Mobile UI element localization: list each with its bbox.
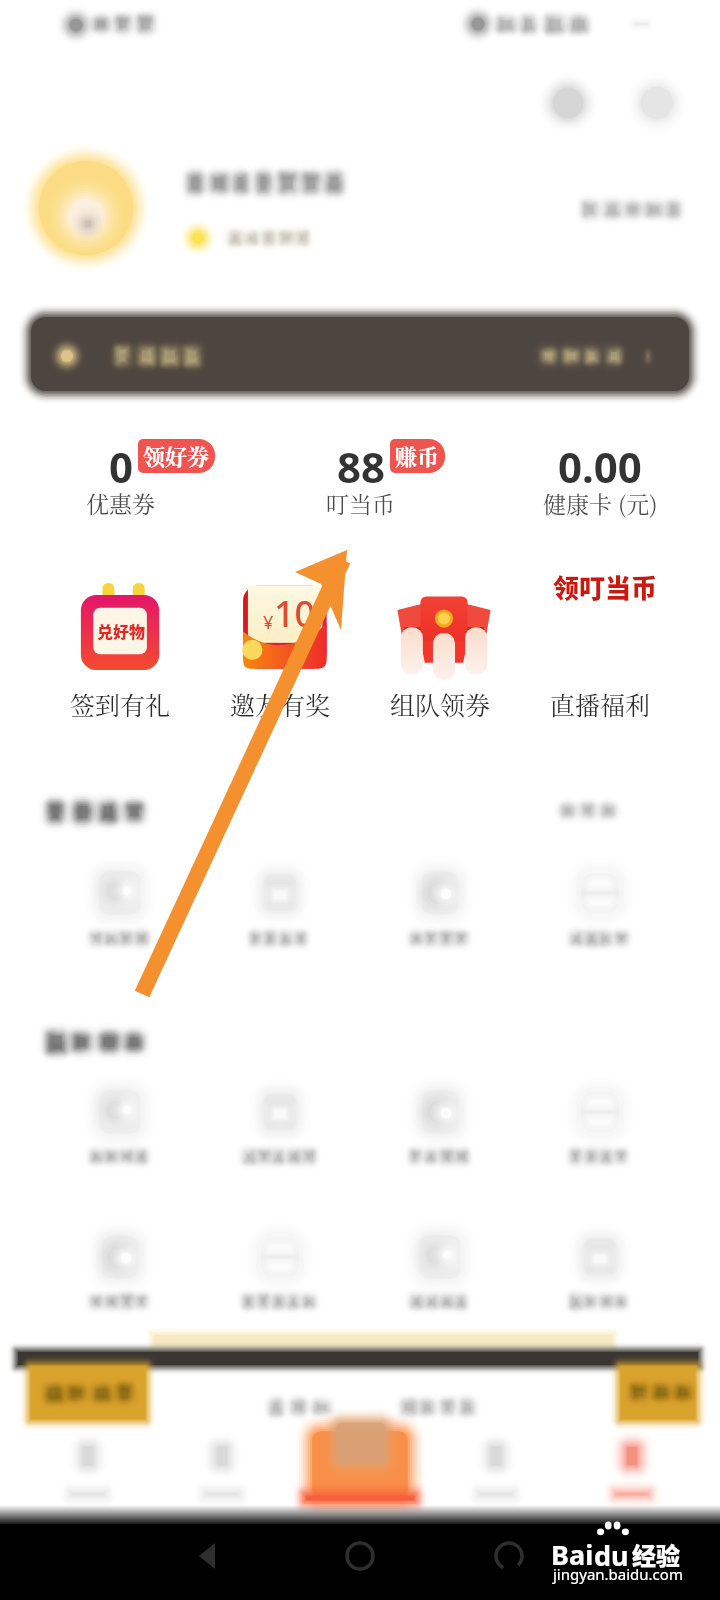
button[interactable]: 赚币 <box>395 440 440 472</box>
staticText: Bai <box>551 1536 594 1573</box>
staticText: 10 <box>274 589 316 638</box>
button[interactable]: 组队领券 <box>360 580 520 722</box>
button[interactable]: 领叮当币 <box>520 580 680 722</box>
staticText: 组队领券 <box>390 686 491 722</box>
staticText: 88 <box>337 438 386 488</box>
staticText: 直播福利 <box>550 686 651 722</box>
button[interactable]: 0.00 <box>480 437 720 520</box>
button[interactable]: 0 <box>0 437 240 520</box>
staticText: du <box>594 1537 629 1574</box>
staticText: 优惠券 <box>86 487 155 520</box>
button[interactable]: 88 <box>240 437 480 520</box>
staticText: jingyan.baidu.com <box>553 1564 683 1584</box>
other: 组队领券 <box>396 584 492 678</box>
staticText: 领好券 <box>143 440 210 472</box>
button[interactable]: 领好券 <box>143 440 210 472</box>
staticText: ¥ <box>263 610 274 635</box>
staticText: 健康卡 (元) <box>543 487 658 520</box>
other: 邀友有奖 <box>240 583 328 671</box>
staticText: 经验 <box>632 1537 680 1572</box>
staticText: 领叮当币 <box>553 568 658 606</box>
staticText: 兑好物 <box>97 619 146 642</box>
staticText: 0 <box>109 438 134 488</box>
staticText: 邀友有奖 <box>230 686 331 722</box>
staticText: 叮当币 <box>326 487 395 520</box>
staticText: 赚币 <box>395 440 440 472</box>
other: 签到有礼 <box>80 583 168 671</box>
button[interactable]: 邀友有奖 <box>200 580 360 722</box>
staticText: 签到有礼 <box>70 686 171 722</box>
staticText: 0.00 <box>558 438 642 488</box>
button[interactable]: 签到有礼 <box>40 580 200 722</box>
